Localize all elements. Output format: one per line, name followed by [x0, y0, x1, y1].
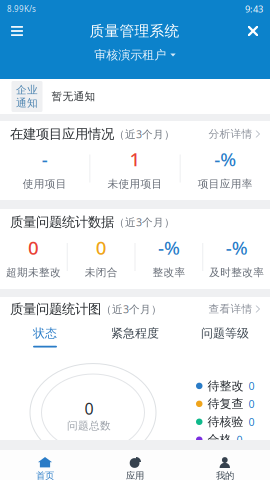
staticText: 9:43 — [245, 3, 263, 15]
staticText: 使用项目 — [23, 177, 67, 190]
staticText: -% — [158, 235, 180, 260]
button[interactable]: 审核演示租户 — [94, 44, 176, 66]
button[interactable]: 我的 — [180, 450, 270, 480]
button[interactable]: 分析详情 — [209, 127, 260, 140]
button[interactable]: Close — [224, 18, 270, 44]
staticText: 企业 通知 — [16, 83, 38, 110]
staticText: 0 — [96, 235, 107, 260]
staticText: 我的 — [216, 470, 234, 480]
staticText: 状态 — [33, 326, 57, 341]
staticText: 待整改 — [207, 378, 243, 393]
button[interactable]: 查看详情 — [209, 302, 260, 315]
button[interactable]: Menu — [0, 18, 45, 44]
staticText: （近3个月） — [101, 302, 162, 316]
button[interactable]: 问题等级 — [180, 326, 270, 347]
staticText: 暂无通知 — [51, 90, 95, 103]
staticText: 未闭合 — [85, 266, 118, 279]
staticText: 未使用项目 — [107, 177, 162, 190]
staticText: 审核演示租户 — [94, 48, 166, 62]
staticText: 0 — [84, 398, 93, 419]
staticText: -% — [214, 147, 236, 171]
staticText: 8.99K/s — [7, 4, 36, 14]
staticText: （近3个月） — [114, 127, 175, 141]
staticText: 质量问题统计图 — [10, 301, 101, 317]
staticText: 紧急程度 — [111, 326, 159, 341]
staticText: 0 — [248, 379, 254, 393]
staticText: 项目应用率 — [198, 177, 253, 190]
staticText: 在建项目应用情况 — [10, 126, 114, 142]
staticText: 及时整改率 — [209, 266, 264, 279]
staticText: 0 — [248, 415, 254, 429]
staticText: 待核验 — [207, 414, 243, 429]
staticText: 问题等级 — [201, 326, 249, 341]
staticText: 分析详情 — [209, 127, 253, 140]
staticText: 0 — [248, 397, 254, 411]
staticText: 质量问题统计数据 — [10, 214, 114, 230]
staticText: 应用 — [126, 470, 144, 480]
button[interactable]: 状态 — [0, 326, 90, 347]
button[interactable]: 紧急程度 — [90, 326, 180, 347]
staticText: 1 — [129, 147, 140, 171]
staticText: 0 — [236, 433, 242, 447]
button[interactable]: 应用 — [90, 450, 180, 480]
staticText: - — [42, 147, 48, 171]
staticText: （近3个月） — [114, 215, 175, 229]
button[interactable]: 首页 — [0, 450, 90, 480]
staticText: 待复查 — [207, 396, 243, 411]
staticText: 质量管理系统 — [89, 22, 179, 40]
staticText: 首页 — [36, 470, 54, 480]
staticText: -% — [226, 235, 248, 260]
staticText: 超期未整改 — [6, 266, 61, 279]
staticText: 合格 — [207, 432, 231, 447]
staticText: 问题总数 — [67, 419, 111, 432]
staticText: 0 — [28, 235, 39, 260]
staticText: 查看详情 — [209, 302, 253, 315]
staticText: 整改率 — [152, 266, 185, 279]
